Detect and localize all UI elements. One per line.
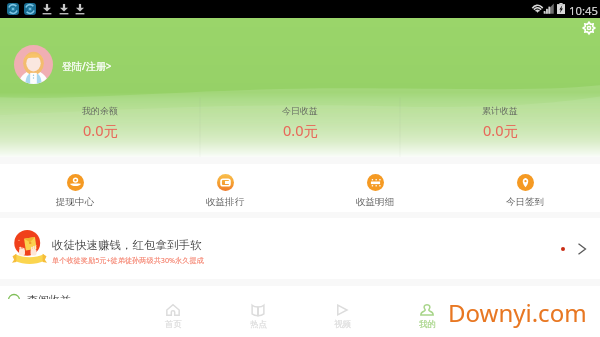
button[interactable]: 热点	[236, 304, 280, 330]
staticText: 0.0元	[283, 120, 318, 140]
button[interactable]: 我的	[405, 304, 449, 330]
staticText: 单个收徒奖励5元+徒弟徒孙两级共30%永久提成	[52, 255, 204, 265]
button[interactable]: 我的余额	[0, 105, 200, 140]
button[interactable]: 今日签到	[450, 164, 600, 212]
staticText: 查阅收益	[27, 293, 71, 306]
staticText: 我的	[419, 319, 436, 330]
staticText: 我的余额	[82, 105, 118, 116]
staticText: 累计收益	[482, 105, 518, 116]
button[interactable]: Settings	[583, 22, 595, 34]
staticText: 0.0元	[83, 120, 118, 140]
staticText: 0.0元	[483, 120, 518, 140]
button[interactable]: 首页	[151, 304, 195, 330]
staticText: 收益排行	[206, 196, 244, 208]
staticText: Downyi.com	[448, 296, 587, 329]
staticText: 视频	[334, 319, 351, 330]
staticText: 今日签到	[506, 196, 544, 208]
staticText: 收徒快速赚钱，红包拿到手软	[52, 238, 202, 252]
button[interactable]: 提现中心	[0, 164, 150, 212]
staticText: 提现中心	[56, 196, 94, 208]
staticText: 首页	[165, 319, 182, 330]
button[interactable]: 收益排行	[150, 164, 300, 212]
button[interactable]: 视频	[320, 304, 364, 330]
staticText: 10:45	[569, 3, 598, 18]
button[interactable]: 累计收益	[400, 105, 600, 140]
button[interactable]: 查阅收益	[0, 293, 600, 306]
staticText: 收益明细	[356, 196, 394, 208]
button[interactable]	[14, 45, 53, 84]
staticText: 热点	[250, 319, 267, 330]
button[interactable]: 今日收益	[200, 105, 400, 140]
staticText: 今日收益	[282, 105, 318, 116]
button[interactable]: 登陆/注册>	[62, 59, 112, 73]
button[interactable]: 收益明细	[300, 164, 450, 212]
button[interactable]: 收徒快速赚钱，红包拿到手软	[0, 218, 600, 279]
